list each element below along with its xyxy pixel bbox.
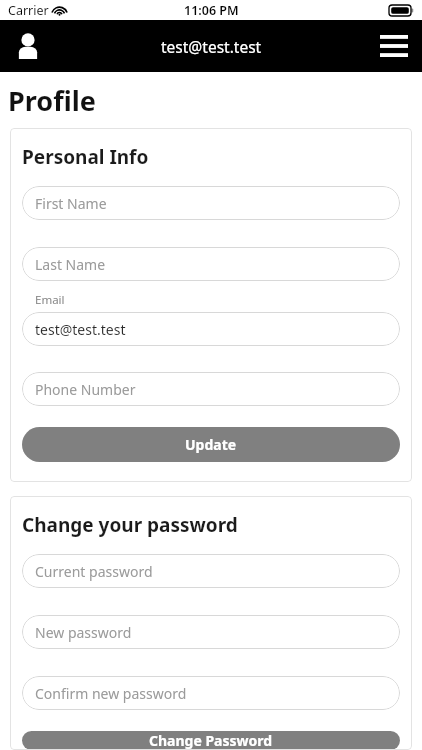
staticText: Last Name [35, 255, 106, 274]
button[interactable]: test@test.test [22, 312, 400, 346]
staticText: Email [35, 292, 65, 308]
staticText: 11:06 PM [184, 2, 239, 19]
button[interactable]: Change Password [22, 731, 400, 750]
button[interactable]: Last Name [22, 247, 400, 281]
staticText: New password [35, 623, 132, 642]
staticText: test@test.test [161, 36, 262, 57]
button[interactable]: Phone Number [22, 372, 400, 406]
staticText: First Name [35, 194, 107, 213]
staticText: Confirm new password [35, 684, 187, 703]
button[interactable]: New password [22, 615, 400, 649]
button[interactable]: Confirm new password [22, 676, 400, 710]
staticText: Carrier [8, 2, 49, 19]
staticText: Phone Number [35, 380, 136, 399]
button[interactable]: Menu [366, 20, 422, 72]
staticText: Update [185, 435, 237, 454]
staticText: Personal Info [22, 144, 149, 170]
button[interactable]: Current password [22, 554, 400, 588]
staticText: Change Password [149, 731, 273, 750]
button[interactable]: First Name [22, 186, 400, 220]
button[interactable]: Profile account [0, 20, 56, 72]
staticText: Current password [35, 562, 153, 581]
staticText: Profile [8, 82, 96, 119]
staticText: test@test.test [35, 320, 126, 339]
staticText: Change your password [22, 512, 238, 538]
button[interactable]: Update [22, 427, 400, 462]
